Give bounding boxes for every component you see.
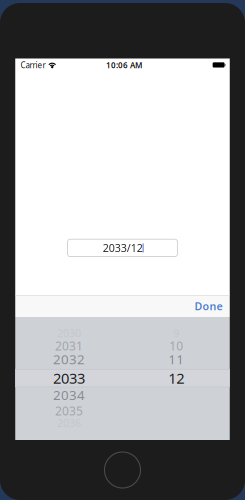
button[interactable]: 2033/12 (68, 239, 177, 257)
staticText: 11 (168, 350, 184, 368)
staticText: 10 (169, 338, 183, 354)
button[interactable]: Done (15, 295, 230, 317)
staticText: 2034 (53, 386, 85, 404)
staticText: Done (194, 299, 222, 313)
staticText: 2033/12 (103, 241, 143, 255)
staticText: 2032 (53, 350, 85, 368)
staticText: 2033 (53, 368, 85, 388)
staticText: 9 (173, 326, 179, 340)
staticText: 12 (168, 368, 184, 388)
staticText: 2035 (55, 403, 83, 419)
staticText: 10:06 AM (106, 60, 142, 70)
staticText: 2036 (57, 416, 81, 430)
staticText: 2030 (57, 326, 81, 340)
staticText: 2031 (55, 338, 83, 354)
staticText: Carrier (20, 60, 45, 70)
